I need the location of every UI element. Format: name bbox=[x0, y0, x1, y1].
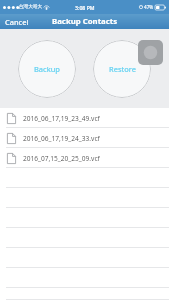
staticText: 2016_07,15_20_25_09.vcf bbox=[23, 154, 100, 163]
staticText: Restore bbox=[109, 64, 136, 74]
staticText: 3:08 PM bbox=[75, 4, 95, 11]
staticText: Backup Contacts bbox=[52, 16, 118, 27]
button[interactable]: Cancel bbox=[0, 15, 34, 29]
other: Loading bbox=[138, 40, 163, 65]
staticText: 2016_06_17,19_24_33.vcf bbox=[23, 134, 100, 143]
staticText: Cancel bbox=[5, 17, 29, 27]
staticText: Backup bbox=[34, 64, 60, 74]
button[interactable]: 2016_06_17,19_24_33.vcf bbox=[0, 128, 169, 148]
staticText: 2016_06_17,19_23_49.vcf bbox=[23, 114, 100, 123]
button[interactable]: Restore bbox=[93, 40, 151, 98]
button[interactable]: 2016_07,15_20_25_09.vcf bbox=[0, 148, 169, 168]
staticText: 台灣大哥大 bbox=[19, 4, 42, 10]
button[interactable]: 2016_06_17,19_23_49.vcf bbox=[0, 108, 169, 128]
button[interactable]: Backup bbox=[18, 40, 76, 98]
staticText: 47% bbox=[144, 4, 154, 10]
